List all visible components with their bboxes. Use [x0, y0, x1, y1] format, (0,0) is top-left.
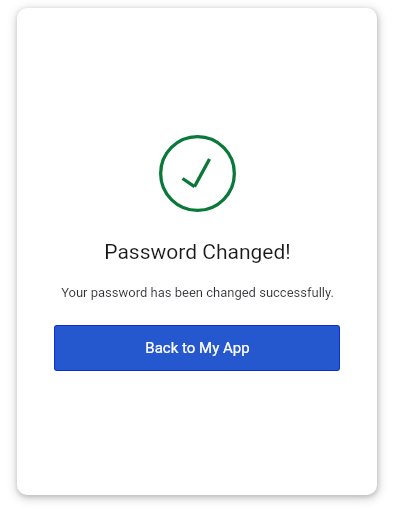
staticText: Your password has been changed successfu…: [61, 285, 334, 300]
staticText: Back to My App: [145, 339, 250, 357]
staticText: Password Changed!: [104, 240, 291, 265]
button[interactable]: Back to My App: [55, 326, 339, 370]
other: Success: [159, 135, 236, 212]
